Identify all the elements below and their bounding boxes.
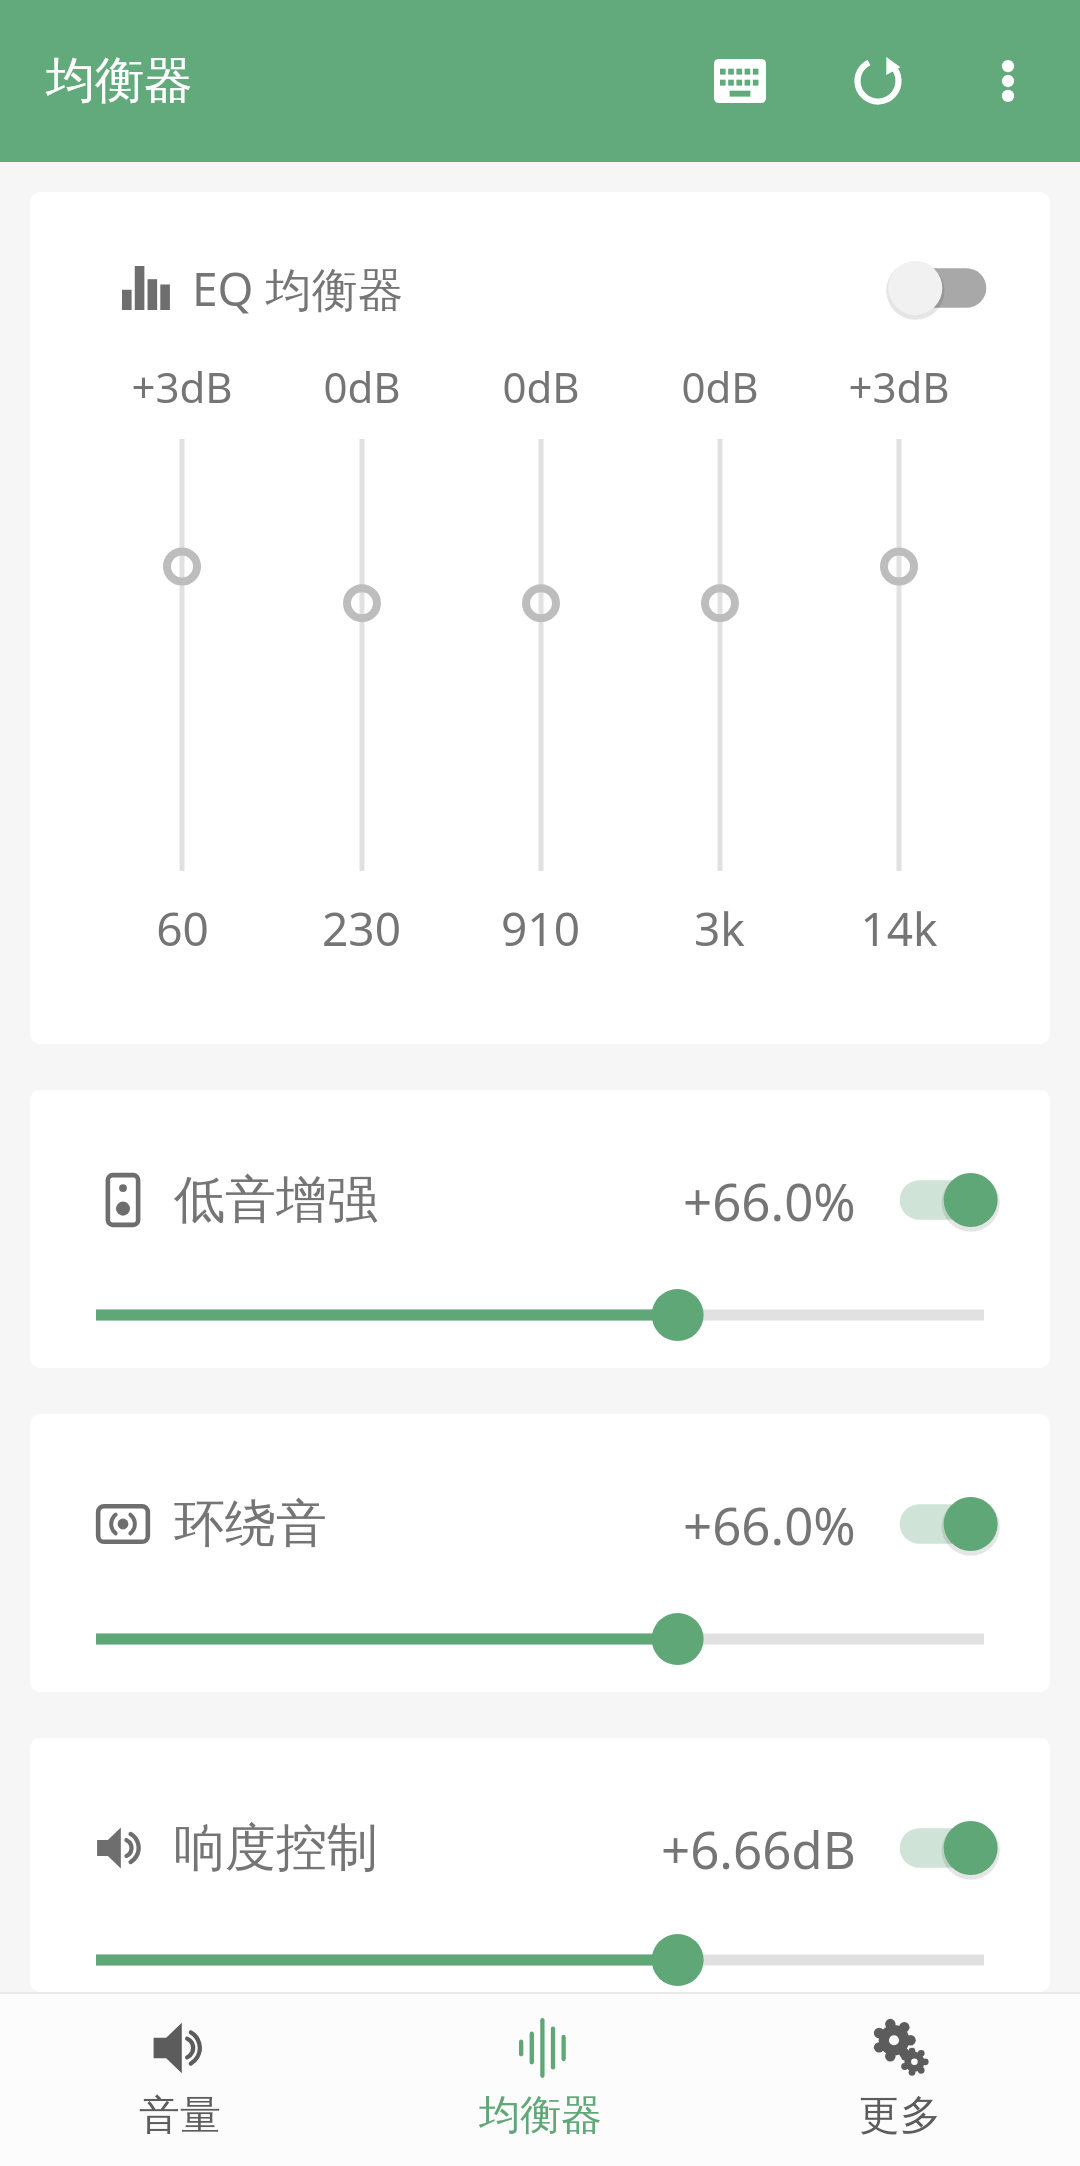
staticText: 14k: [860, 897, 938, 960]
staticText: +66.0%: [683, 1166, 856, 1235]
button[interactable]: [96, 1928, 984, 1992]
button[interactable]: [96, 1604, 984, 1674]
staticText: 均衡器: [479, 2090, 602, 2142]
button[interactable]: [630, 439, 809, 871]
staticText: +3dB: [848, 358, 950, 415]
button[interactable]: [272, 439, 451, 871]
button[interactable]: [96, 1280, 984, 1350]
staticText: 响度控制: [174, 1816, 378, 1880]
staticText: 均衡器: [46, 50, 193, 112]
button[interactable]: Enabled: [886, 1486, 1000, 1562]
staticText: 3k: [694, 897, 745, 960]
button[interactable]: 环绕音: [30, 1414, 1050, 1692]
staticText: +66.0%: [683, 1490, 856, 1559]
staticText: 更多: [859, 2090, 941, 2142]
button[interactable]: Keyboard: [692, 33, 788, 129]
button[interactable]: [92, 439, 272, 871]
button[interactable]: 响度控制: [30, 1738, 1050, 1992]
staticText: 60: [156, 897, 209, 960]
staticText: +6.66dB: [661, 1814, 856, 1883]
staticText: 230: [322, 897, 401, 960]
staticText: 音量: [139, 2090, 221, 2142]
staticText: 环绕音: [174, 1492, 327, 1556]
button[interactable]: 低音增强: [30, 1090, 1050, 1368]
button[interactable]: 音量: [0, 1994, 360, 2166]
staticText: 910: [501, 897, 580, 960]
button[interactable]: 更多: [720, 1994, 1080, 2166]
staticText: EQ 均衡器: [192, 257, 404, 320]
staticText: 0dB: [502, 358, 580, 415]
staticText: +3dB: [131, 358, 233, 415]
staticText: 0dB: [323, 358, 401, 415]
button[interactable]: [809, 439, 988, 871]
button[interactable]: 均衡器: [360, 1994, 720, 2166]
button[interactable]: Enabled: [886, 1810, 1000, 1886]
staticText: 低音增强: [174, 1168, 378, 1232]
staticText: 0dB: [681, 358, 759, 415]
button[interactable]: Enabled: [886, 1162, 1000, 1238]
button[interactable]: Refresh: [830, 33, 926, 129]
button[interactable]: Disabled: [886, 250, 1000, 326]
button[interactable]: [451, 439, 630, 871]
button[interactable]: More options: [960, 33, 1056, 129]
